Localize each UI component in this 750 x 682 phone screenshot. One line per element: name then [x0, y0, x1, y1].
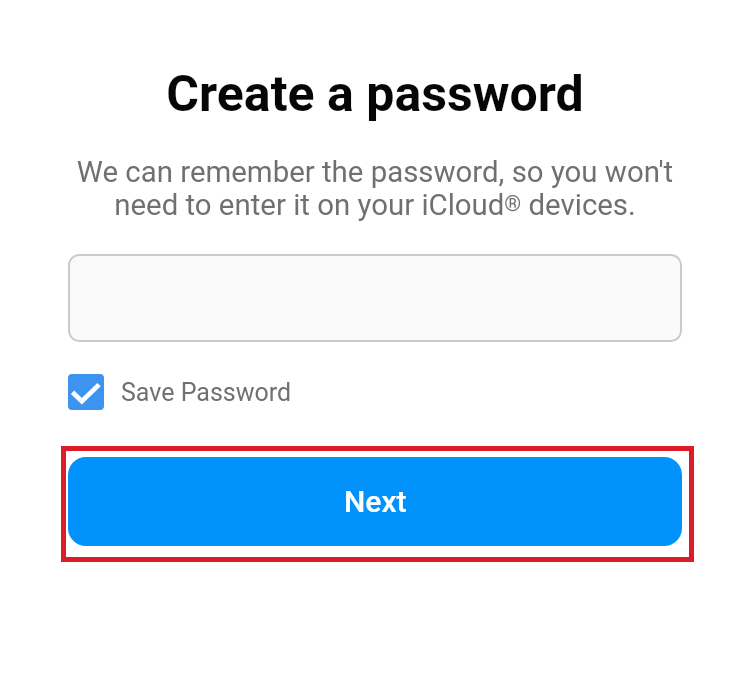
staticText: We can remember the password, so you won… [0, 155, 750, 189]
staticText: Save Password [121, 378, 292, 407]
staticText: need to enter it on your iCloud® devices… [0, 188, 750, 222]
button[interactable]: Next [68, 457, 682, 546]
button[interactable]: Password entry field [68, 254, 682, 342]
button[interactable]: Save Password [68, 374, 292, 410]
staticText: Next [344, 484, 407, 519]
staticText: Create a password [0, 65, 750, 124]
